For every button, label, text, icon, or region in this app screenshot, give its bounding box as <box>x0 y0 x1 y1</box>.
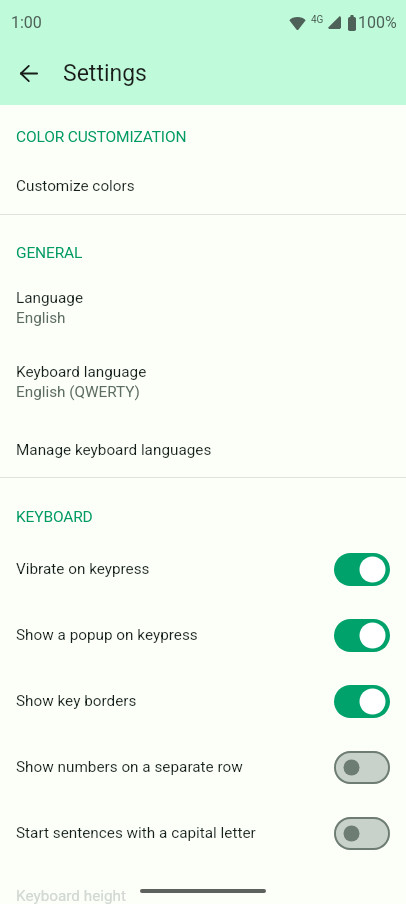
staticText: Show a popup on keypress <box>16 626 334 644</box>
staticText: Start sentences with a capital letter <box>16 824 334 842</box>
button[interactable]: Back <box>7 51 51 95</box>
button[interactable]: Show key borders <box>0 668 406 734</box>
staticText: Show key borders <box>16 692 334 710</box>
button[interactable]: Keyboard language <box>0 363 406 401</box>
button[interactable]: Language <box>0 289 406 327</box>
staticText: English <box>16 309 66 327</box>
button[interactable]: Start sentences with a capital letter <box>0 800 406 866</box>
staticText: Settings <box>63 60 147 87</box>
staticText: Keyboard height <box>16 887 127 904</box>
button[interactable]: Show a popup on keypress <box>0 602 406 668</box>
staticText: Show numbers on a separate row <box>16 758 334 776</box>
button[interactable]: Show numbers on a separate row <box>0 734 406 800</box>
staticText: English (QWERTY) <box>16 383 140 401</box>
staticText: COLOR CUSTOMIZATION <box>16 128 187 146</box>
staticText: Manage keyboard languages <box>16 441 212 459</box>
staticText: 1:00 <box>11 13 42 32</box>
staticText: Language <box>16 289 84 307</box>
staticText: KEYBOARD <box>16 508 93 526</box>
staticText: GENERAL <box>16 244 83 262</box>
button[interactable]: Vibrate on keypress <box>0 536 406 602</box>
staticText: Customize colors <box>16 177 135 195</box>
button[interactable]: Manage keyboard languages <box>0 439 406 461</box>
staticText: Vibrate on keypress <box>16 560 334 578</box>
button[interactable]: Customize colors <box>0 158 406 214</box>
staticText: 100% <box>358 13 397 32</box>
button[interactable]: Keyboard height <box>0 866 406 904</box>
staticText: Keyboard language <box>16 363 147 381</box>
staticText: 4G <box>311 14 324 26</box>
